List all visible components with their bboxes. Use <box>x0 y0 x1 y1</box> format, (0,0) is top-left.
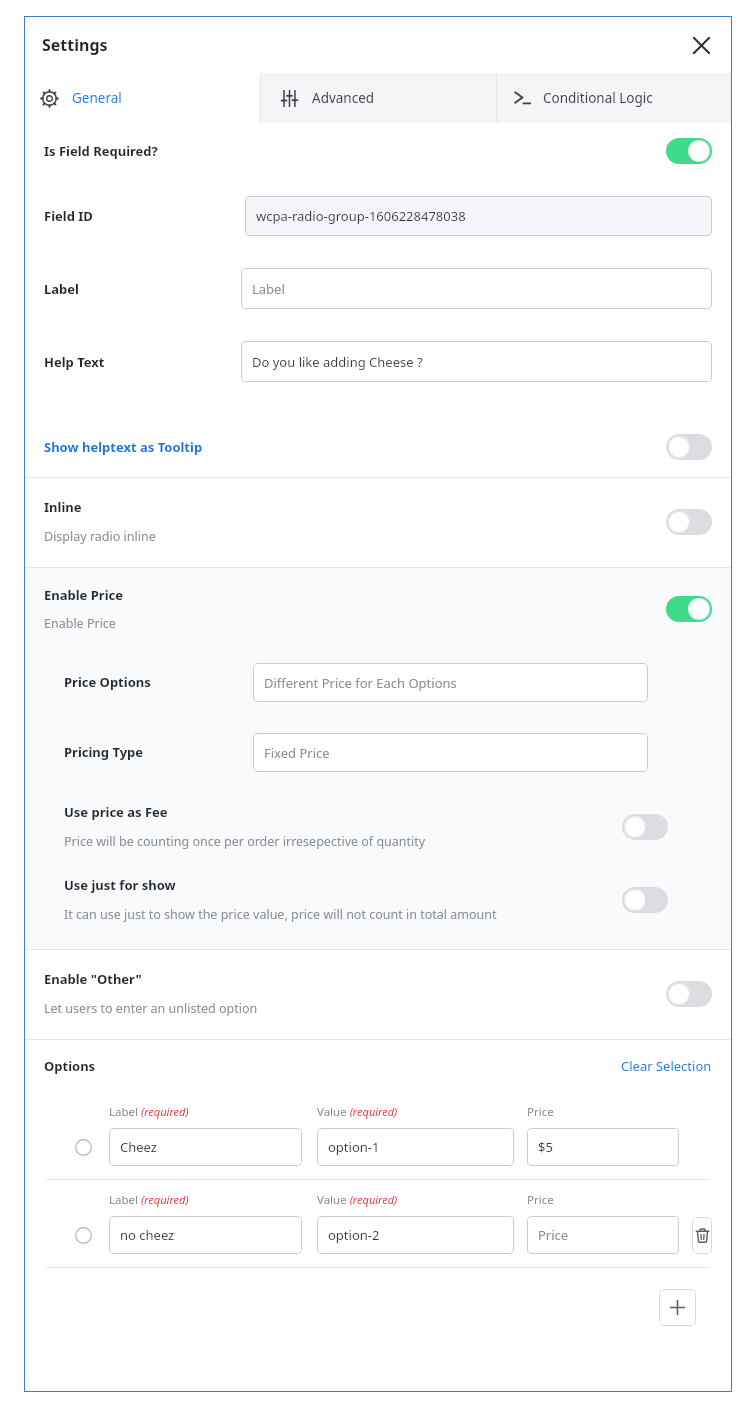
button[interactable]: Is Field Required? <box>24 123 732 179</box>
button[interactable]: Show helptext as Tooltip toggle <box>666 434 712 460</box>
button[interactable]: Enable "Other" <box>24 950 732 1039</box>
staticText: Is Field Required? <box>44 142 158 160</box>
button[interactable]: Enable Price toggle <box>666 596 712 622</box>
button[interactable]: Enable Other toggle <box>666 981 712 1007</box>
staticText: $5 <box>538 1138 553 1156</box>
staticText: no cheez <box>120 1226 175 1244</box>
button[interactable]: General <box>24 73 260 123</box>
staticText: Price <box>538 1226 569 1244</box>
staticText: Value (required) <box>317 1104 398 1120</box>
staticText: Pricing Type <box>64 743 253 761</box>
staticText: It can use just to show the price value,… <box>64 906 497 923</box>
staticText: Enable Price <box>44 586 123 604</box>
staticText: Cheez <box>120 1138 157 1156</box>
staticText: Do you like adding Cheese ? <box>252 353 423 371</box>
staticText: Settings <box>42 34 108 56</box>
button[interactable]: Cheez <box>109 1128 302 1166</box>
button[interactable]: Show helptext as Tooltip <box>24 417 732 477</box>
staticText: Field ID <box>44 207 245 225</box>
staticText: Use price as Fee <box>64 803 168 821</box>
staticText: Clear Selection <box>621 1057 712 1075</box>
staticText: Price Options <box>64 673 253 691</box>
staticText: Advanced <box>312 89 375 107</box>
button[interactable]: no cheez <box>109 1216 302 1254</box>
staticText: Different Price for Each Options <box>264 674 457 692</box>
staticText: Value (required) <box>317 1192 398 1208</box>
staticText: Options <box>44 1057 96 1075</box>
staticText: Label <box>252 280 285 298</box>
staticText: option-1 <box>328 1138 380 1156</box>
staticText: Price <box>527 1192 554 1208</box>
staticText: Enable "Other" <box>44 970 142 988</box>
button[interactable]: Inline <box>24 478 732 567</box>
button[interactable]: Use just for show <box>24 866 732 949</box>
staticText: Enable Price <box>44 615 116 632</box>
staticText: Let users to enter an unlisted option <box>44 1000 258 1017</box>
staticText: Display radio inline <box>44 528 156 545</box>
button[interactable]: $5 <box>527 1128 679 1166</box>
button[interactable]: Is Field Required toggle <box>666 138 712 164</box>
button[interactable]: option-2 <box>317 1216 514 1254</box>
button[interactable]: Select option <box>70 1222 96 1248</box>
button[interactable]: Inline toggle <box>666 509 712 535</box>
staticText: Help Text <box>44 353 241 371</box>
button[interactable]: Different Price for Each Options <box>253 663 648 702</box>
button[interactable]: Clear Selection <box>621 1057 712 1075</box>
button[interactable]: Conditional Logic <box>497 73 732 123</box>
staticText: General <box>72 89 122 107</box>
button[interactable]: Use just for show toggle <box>622 887 668 913</box>
button[interactable]: Use price as Fee <box>24 795 732 866</box>
button[interactable]: Delete option <box>692 1217 712 1254</box>
button[interactable]: Label <box>241 268 712 309</box>
staticText: Label (required) <box>109 1192 189 1208</box>
button[interactable]: wcpa-radio-group-1606228478038 <box>245 196 712 236</box>
staticText: Label (required) <box>109 1104 189 1120</box>
staticText: option-2 <box>328 1226 380 1244</box>
button[interactable]: Use price as Fee toggle <box>622 814 668 840</box>
staticText: Inline <box>44 498 82 516</box>
button[interactable]: option-1 <box>317 1128 514 1166</box>
button[interactable]: Fixed Price <box>253 733 648 772</box>
staticText: Conditional Logic <box>543 89 653 107</box>
button[interactable]: Add option <box>659 1289 696 1326</box>
staticText: Price <box>527 1104 554 1120</box>
button[interactable]: Enable Price <box>24 568 732 632</box>
button[interactable]: Price <box>527 1216 679 1254</box>
button[interactable]: Close <box>684 28 718 62</box>
button[interactable]: Select option <box>70 1134 96 1160</box>
staticText: Use just for show <box>64 876 176 894</box>
staticText: Label <box>44 280 241 298</box>
staticText: Price will be counting once per order ir… <box>64 833 426 850</box>
button[interactable]: Do you like adding Cheese ? <box>241 341 712 382</box>
staticText: wcpa-radio-group-1606228478038 <box>256 207 466 225</box>
button[interactable]: Advanced <box>261 73 496 123</box>
staticText: Fixed Price <box>264 744 330 762</box>
staticText: Show helptext as Tooltip <box>44 438 203 456</box>
